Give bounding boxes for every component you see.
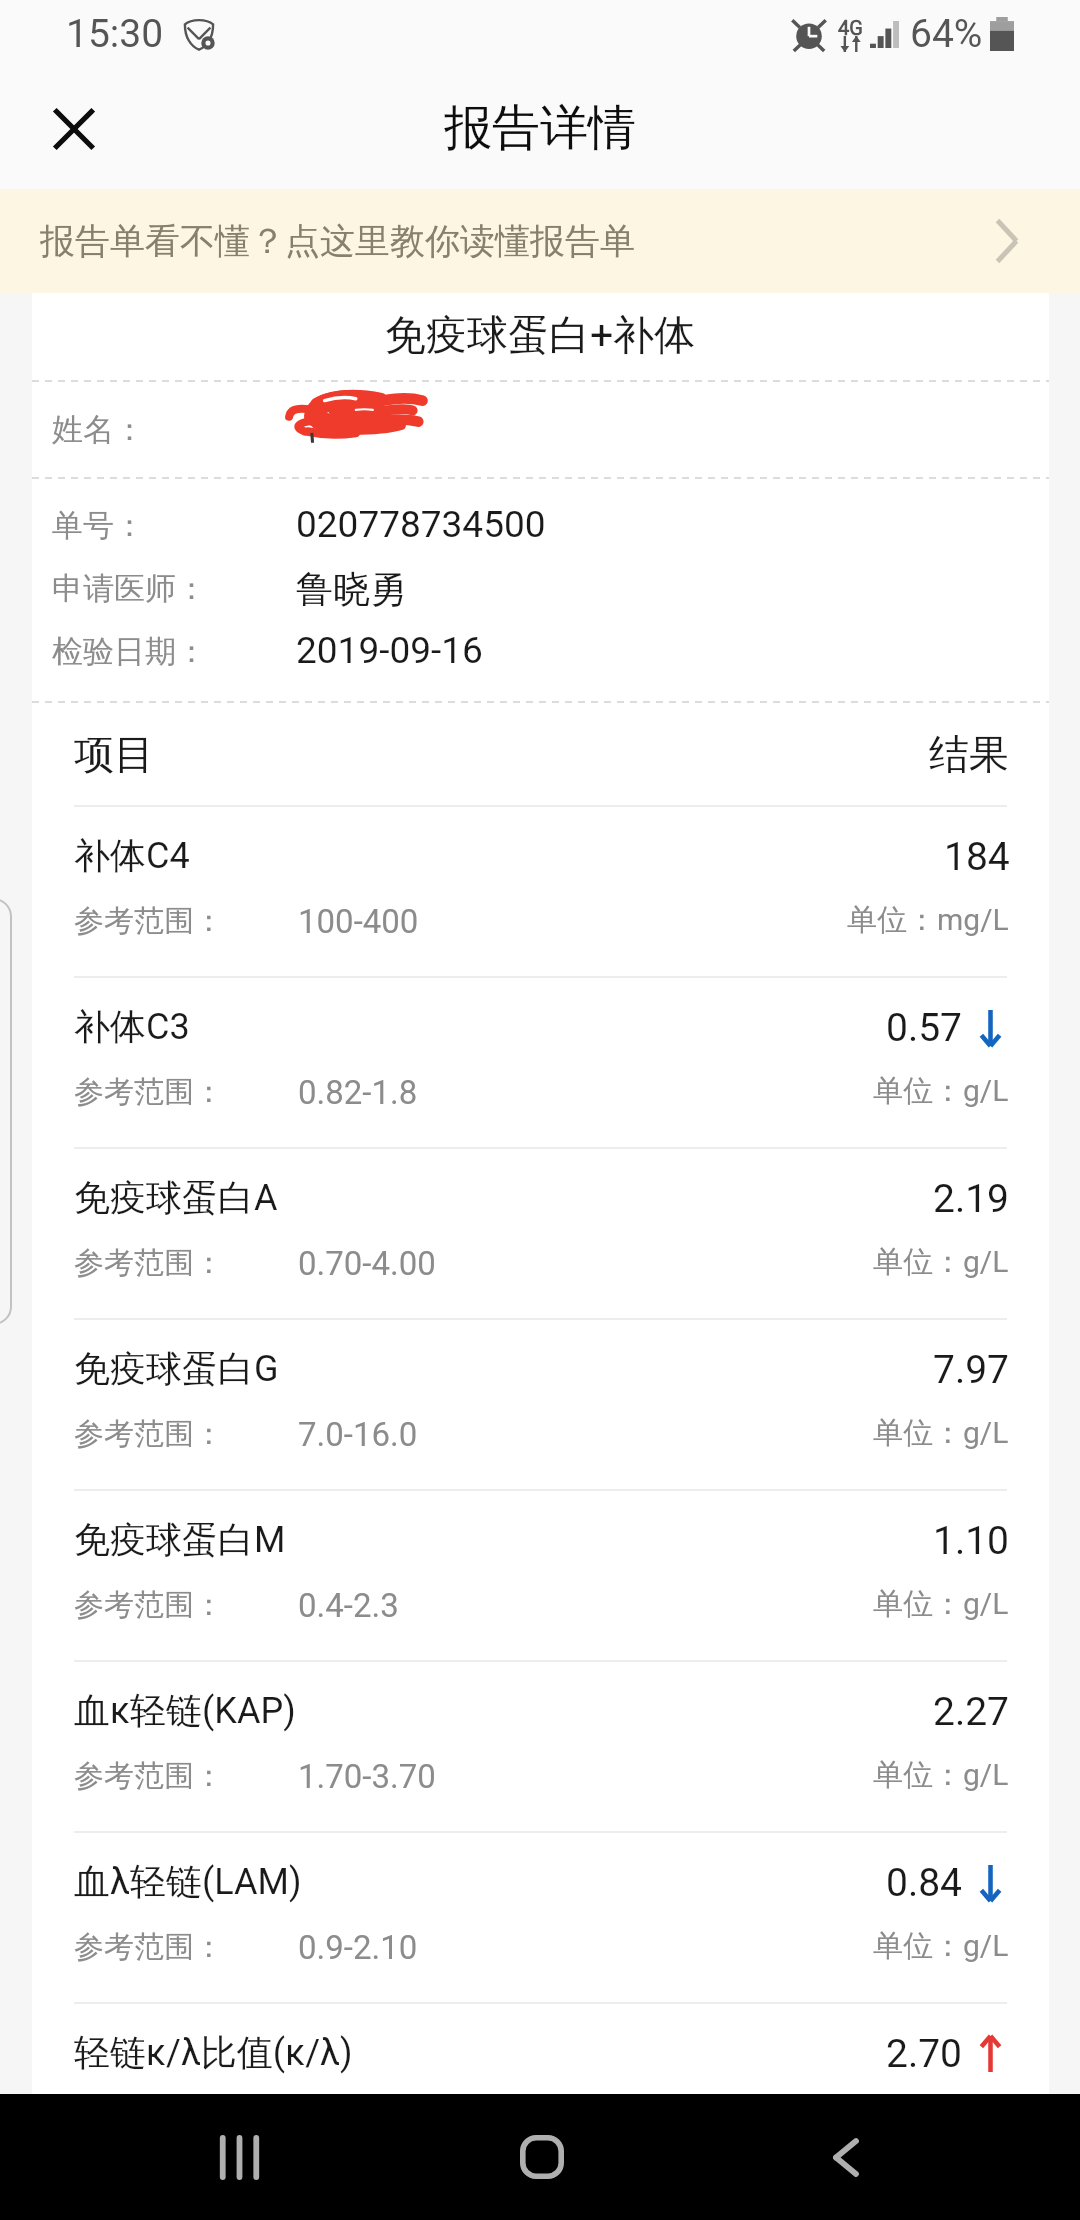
staticText: 7.97 (933, 1347, 1010, 1393)
staticText: 单位：g/L (873, 1756, 1009, 1794)
staticText: 检验日期： (52, 632, 207, 671)
staticText: 免疫球蛋白A (74, 1175, 278, 1220)
staticText: 1.10 (933, 1518, 1010, 1564)
button[interactable]: 报告单看不懂？点这里教你读懂报告单 (0, 189, 1080, 293)
staticText: 1.70-3.70 (298, 1757, 436, 1796)
staticText: 2019-09-16 (296, 629, 483, 672)
staticText: 血κ轻链(KAP) (74, 1688, 296, 1733)
staticText: 结果 (929, 729, 1009, 779)
staticText: 报告单看不懂？点这里教你读懂报告单 (40, 219, 635, 263)
staticText: 参考范围： (74, 1757, 224, 1795)
staticText: 2.70 (886, 2031, 963, 2077)
staticText: 补体C3 (74, 1004, 190, 1049)
staticText: 姓名： (52, 410, 145, 449)
staticText: 免疫球蛋白+补体 (385, 310, 696, 362)
staticText: 020778734500 (296, 503, 546, 546)
staticText: 0.70-4.00 (298, 1244, 436, 1283)
staticText: 2.27 (933, 1689, 1010, 1735)
button[interactable]: Back (802, 2115, 886, 2199)
staticText: 单位：g/L (873, 1585, 1009, 1623)
staticText: 0.82-1.8 (298, 1073, 418, 1112)
button[interactable]: Home (500, 2115, 584, 2199)
staticText: 单位：g/L (873, 1243, 1009, 1281)
staticText: 0.4-2.3 (298, 1586, 399, 1625)
staticText: 补体C4 (74, 833, 190, 878)
staticText: 100-400 (298, 902, 419, 941)
staticText: 7.0-16.0 (298, 1415, 418, 1454)
staticText: 血λ轻链(LAM) (74, 1859, 302, 1904)
staticText: 免疫球蛋白G (74, 1346, 279, 1391)
staticText: 0.9-2.10 (298, 1928, 418, 1967)
button[interactable]: 免疫球蛋白G (32, 1320, 1049, 1489)
button[interactable]: 补体C3 (32, 978, 1049, 1147)
staticText: 单位：mg/L (847, 901, 1009, 939)
staticText: 申请医师： (52, 569, 207, 608)
button[interactable]: 血κ轻链(KAP) (32, 1662, 1049, 1831)
staticText: 单位：g/L (873, 1072, 1009, 1110)
staticText: 参考范围： (74, 1415, 224, 1453)
staticText: 0.84 (886, 1860, 963, 1906)
staticText: 64% (910, 11, 983, 57)
staticText: 参考范围： (74, 1586, 224, 1624)
staticText: 2.19 (933, 1176, 1010, 1222)
button[interactable]: Recent apps (197, 2115, 281, 2199)
staticText: 单号： (52, 506, 145, 545)
staticText: 参考范围： (74, 902, 224, 940)
staticText: 4G (838, 16, 863, 39)
staticText: 免疫球蛋白M (74, 1517, 286, 1562)
staticText: 鲁晓勇 (296, 566, 407, 613)
button[interactable]: 补体C4 (32, 807, 1049, 976)
staticText: 轻链κ/λ比值(κ/λ) (74, 2030, 353, 2075)
button[interactable]: Close (30, 89, 118, 177)
staticText: 单位：g/L (873, 1927, 1009, 1965)
button[interactable]: 免疫球蛋白A (32, 1149, 1049, 1318)
staticText: 184 (944, 834, 1010, 880)
staticText: 参考范围： (74, 1928, 224, 1966)
staticText: 项目 (74, 729, 154, 779)
staticText: 参考范围： (74, 1244, 224, 1282)
staticText: 0.57 (886, 1005, 963, 1051)
button[interactable]: 血λ轻链(LAM) (32, 1833, 1049, 2002)
staticText: 15:30 (66, 11, 164, 57)
button[interactable]: 轻链κ/λ比值(κ/λ) (32, 2004, 1049, 2094)
button[interactable]: 免疫球蛋白M (32, 1491, 1049, 1660)
staticText: 报告详情 (444, 98, 636, 158)
staticText: 单位：g/L (873, 1414, 1009, 1452)
staticText: 参考范围： (74, 1073, 224, 1111)
